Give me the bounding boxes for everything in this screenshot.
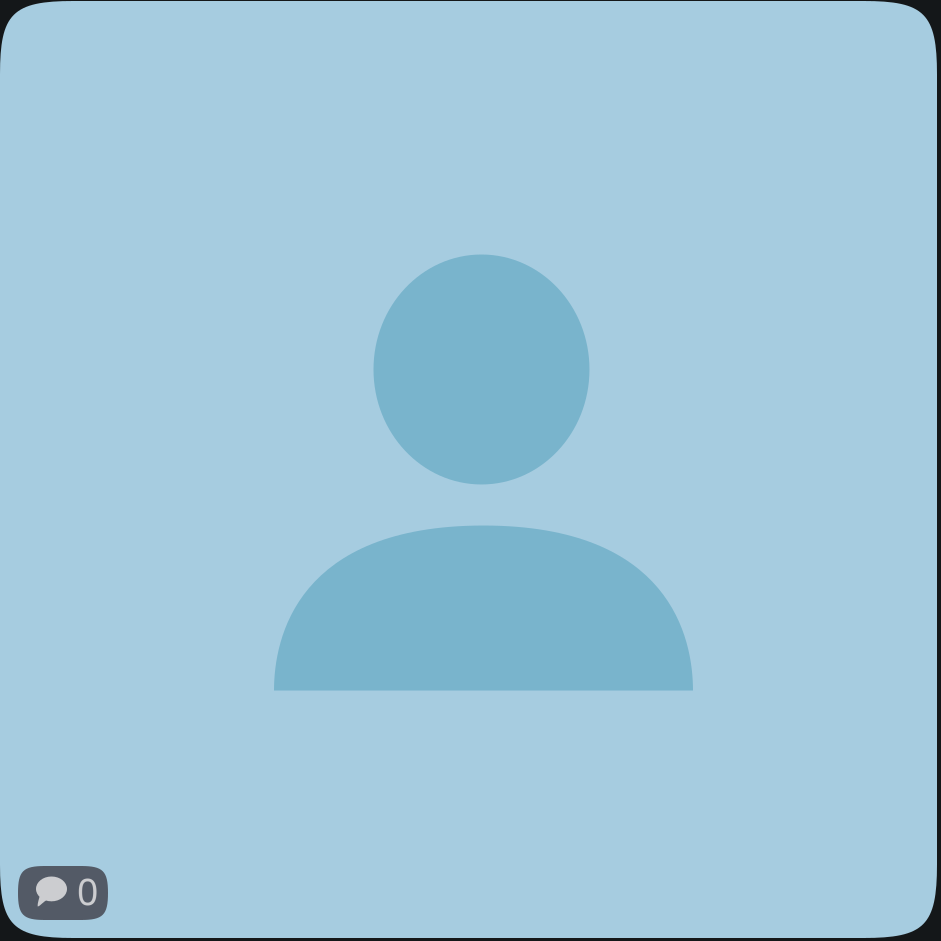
staticText: 0 [77, 866, 98, 916]
button[interactable]: Comments [18, 866, 108, 920]
